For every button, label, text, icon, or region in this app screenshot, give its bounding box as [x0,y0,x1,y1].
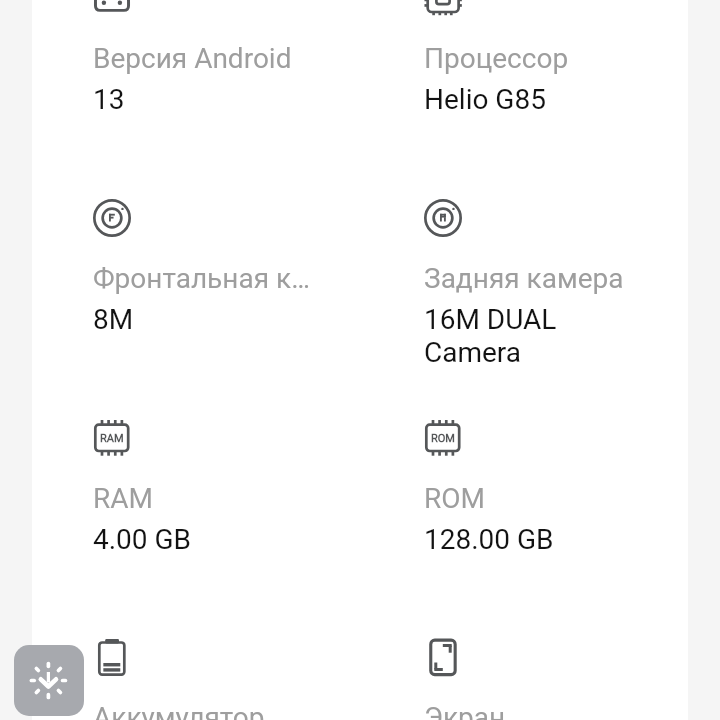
button[interactable]: Install app [14,645,84,716]
staticText: 13 [93,83,125,116]
staticText: Процессор [424,42,569,75]
button[interactable]: Задняя камера [424,199,646,369]
staticText: 16M DUAL Camera [424,303,646,369]
staticText: ROM [424,482,485,515]
staticText: RAM [100,432,124,445]
button[interactable]: Фронтальная камера [93,199,315,336]
staticText: ROM [431,432,455,445]
staticText: Задняя камера [424,262,624,295]
staticText: RAM [93,482,153,515]
staticText: 8M [93,303,134,336]
staticText: Экран [424,701,506,720]
staticText: Аккумулятор [93,701,265,720]
button[interactable]: Аккумулятор [93,638,315,720]
button[interactable]: RAM [93,419,315,556]
button[interactable]: Экран [424,638,646,720]
button[interactable]: Версия Android [93,0,315,116]
staticText: Фронтальная камера [93,262,315,295]
staticText: 128.00 GB [424,523,554,556]
button[interactable]: Процессор [424,0,646,116]
staticText: Helio G85 [424,83,546,116]
staticText: Версия Android [93,42,292,75]
staticText: 4.00 GB [93,523,192,556]
button[interactable]: ROM [424,419,646,556]
